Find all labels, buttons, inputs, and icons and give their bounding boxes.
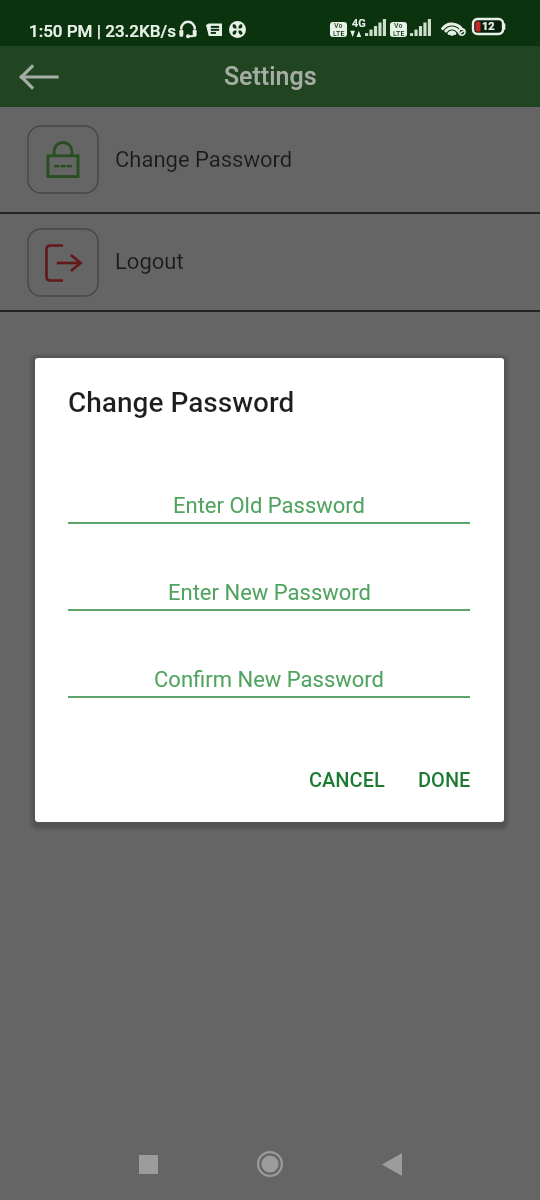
- staticText: Logout: [115, 249, 184, 275]
- staticText: 12: [482, 20, 495, 33]
- staticText: Enter New Password: [168, 580, 371, 606]
- staticText: LTE: [333, 30, 345, 37]
- staticText: 1:50 PM | 23.2KB/s: [29, 21, 176, 41]
- button[interactable]: Home: [246, 1140, 294, 1188]
- staticText: Vo: [394, 22, 403, 30]
- button[interactable]: Change Password: [0, 107, 540, 212]
- button[interactable]: Recent apps: [126, 1142, 170, 1186]
- staticText: Vo: [334, 22, 343, 30]
- button[interactable]: DONE: [410, 760, 479, 799]
- button[interactable]: Enter Old Password: [68, 464, 470, 524]
- staticText: LTE: [393, 30, 405, 37]
- staticText: 4G: [352, 17, 366, 30]
- staticText: Confirm New Password: [154, 667, 384, 693]
- staticText: Change Password: [115, 147, 293, 173]
- button[interactable]: Enter New Password: [68, 551, 470, 611]
- button[interactable]: Back: [15, 53, 63, 101]
- button[interactable]: Logout: [0, 214, 540, 310]
- staticText: Settings: [224, 62, 317, 91]
- staticText: Change Password: [68, 386, 295, 419]
- staticText: CANCEL: [309, 768, 385, 791]
- button[interactable]: Confirm New Password: [68, 638, 470, 698]
- button[interactable]: CANCEL: [301, 760, 393, 799]
- staticText: DONE: [418, 768, 471, 791]
- staticText: Enter Old Password: [173, 493, 365, 519]
- button[interactable]: Back: [370, 1142, 414, 1186]
